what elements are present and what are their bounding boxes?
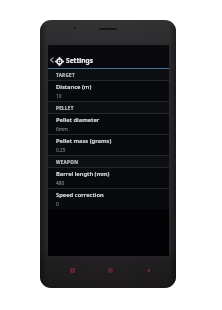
button[interactable]: Back xyxy=(129,258,167,283)
staticText: PELLET xyxy=(56,105,74,111)
staticText: 0.25 xyxy=(56,147,66,154)
staticText: 6mm xyxy=(56,126,68,133)
staticText: Pellet mass (grams) xyxy=(56,137,112,145)
staticText: Settings xyxy=(66,56,94,65)
staticText: 480 xyxy=(56,180,65,187)
button[interactable]: Recent apps xyxy=(53,258,91,283)
staticText: WEAPON xyxy=(56,159,79,165)
staticText: Barrel length (mm) xyxy=(56,170,110,178)
button[interactable]: Speed correction xyxy=(48,189,169,209)
button[interactable]: Navigate up xyxy=(48,52,64,68)
staticText: 10 xyxy=(56,93,62,100)
staticText: Speed correction xyxy=(56,191,104,199)
button[interactable]: Pellet diameter xyxy=(48,114,169,134)
button[interactable]: Home xyxy=(91,258,129,283)
button[interactable]: Distance (m) xyxy=(48,81,169,101)
staticText: Distance (m) xyxy=(56,83,92,91)
button[interactable]: Pellet mass (grams) xyxy=(48,135,169,155)
staticText: 0 xyxy=(56,201,59,208)
staticText: TARGET xyxy=(56,72,75,78)
button[interactable]: Barrel length (mm) xyxy=(48,168,169,188)
staticText: Pellet diameter xyxy=(56,116,100,124)
